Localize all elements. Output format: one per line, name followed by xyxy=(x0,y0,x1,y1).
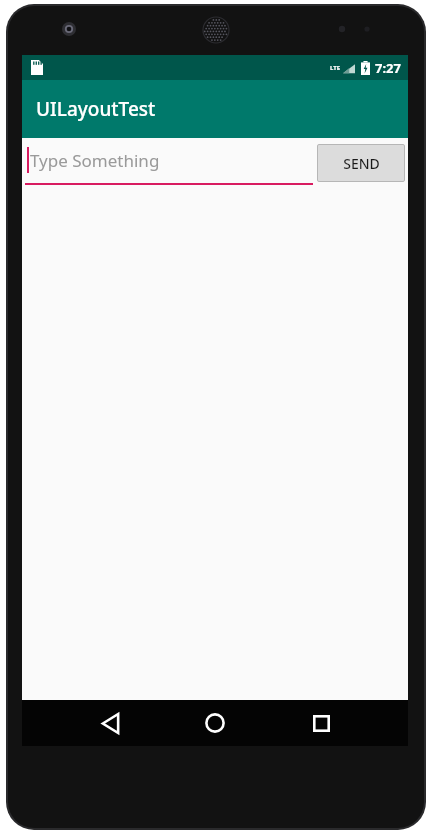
button[interactable]: Type Something xyxy=(25,141,313,185)
staticText: UILayoutTest xyxy=(36,96,156,122)
button[interactable]: Recent apps xyxy=(299,700,343,746)
staticText: SEND xyxy=(343,154,380,173)
staticText: Type Something xyxy=(30,149,160,172)
staticText: LTE xyxy=(330,64,341,72)
button[interactable]: SEND xyxy=(317,144,405,182)
staticText: 7:27 xyxy=(375,59,401,77)
button[interactable]: Home xyxy=(193,700,237,746)
button[interactable]: Back xyxy=(88,700,132,746)
